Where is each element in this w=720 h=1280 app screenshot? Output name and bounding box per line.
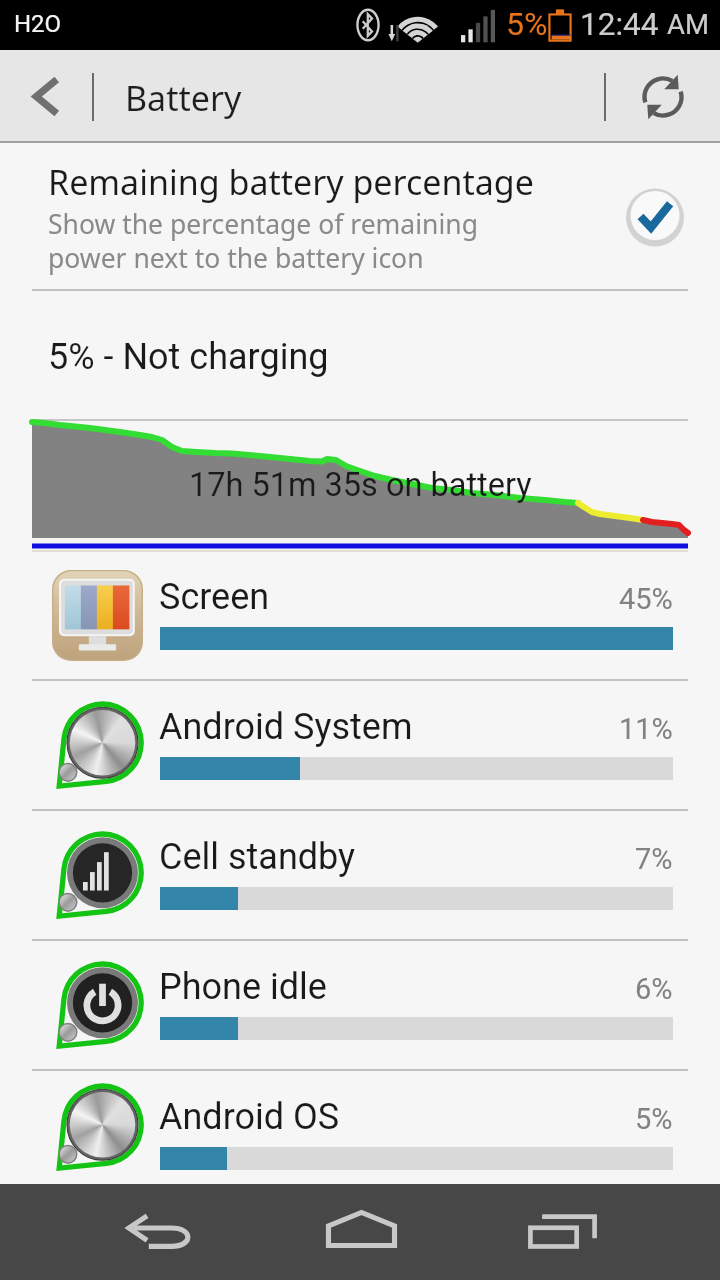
staticText: Battery (125, 75, 242, 121)
staticText: Phone idle (159, 966, 327, 1008)
staticText: Cell standby (159, 836, 356, 878)
staticText: 12:44 (580, 6, 659, 43)
button[interactable]: Refresh (606, 50, 720, 143)
staticText: H2O (14, 10, 62, 38)
staticText: 45% (619, 582, 673, 616)
staticText: 5% (506, 5, 548, 43)
staticText: 17h 51m 35s on battery (189, 466, 532, 504)
staticText: Screen (159, 576, 270, 618)
staticText: 6% (635, 972, 673, 1006)
button[interactable]: Show battery percentage checkbox (590, 143, 720, 289)
button[interactable]: Recent apps (462, 1184, 663, 1280)
staticText: Remaining battery percentage (48, 159, 534, 205)
button[interactable]: Android System (0, 681, 720, 809)
staticText: Android System (159, 706, 413, 748)
staticText: 5% - Not charging (48, 336, 329, 378)
button[interactable]: Back (60, 1184, 261, 1280)
staticText: Show the percentage of remaining power n… (48, 206, 478, 276)
button[interactable]: Android OS (0, 1071, 720, 1184)
button[interactable]: Screen (0, 551, 720, 679)
staticText: AM (667, 8, 709, 40)
button[interactable]: Home (261, 1184, 462, 1280)
button[interactable]: Cell standby (0, 811, 720, 939)
button[interactable]: Navigate up (0, 50, 92, 143)
staticText: 7% (635, 842, 673, 876)
button[interactable]: Remaining battery percentage (0, 143, 720, 289)
staticText: 5% (635, 1102, 673, 1136)
staticText: 11% (619, 712, 673, 746)
staticText: Android OS (159, 1096, 340, 1138)
button[interactable]: Phone idle (0, 941, 720, 1069)
